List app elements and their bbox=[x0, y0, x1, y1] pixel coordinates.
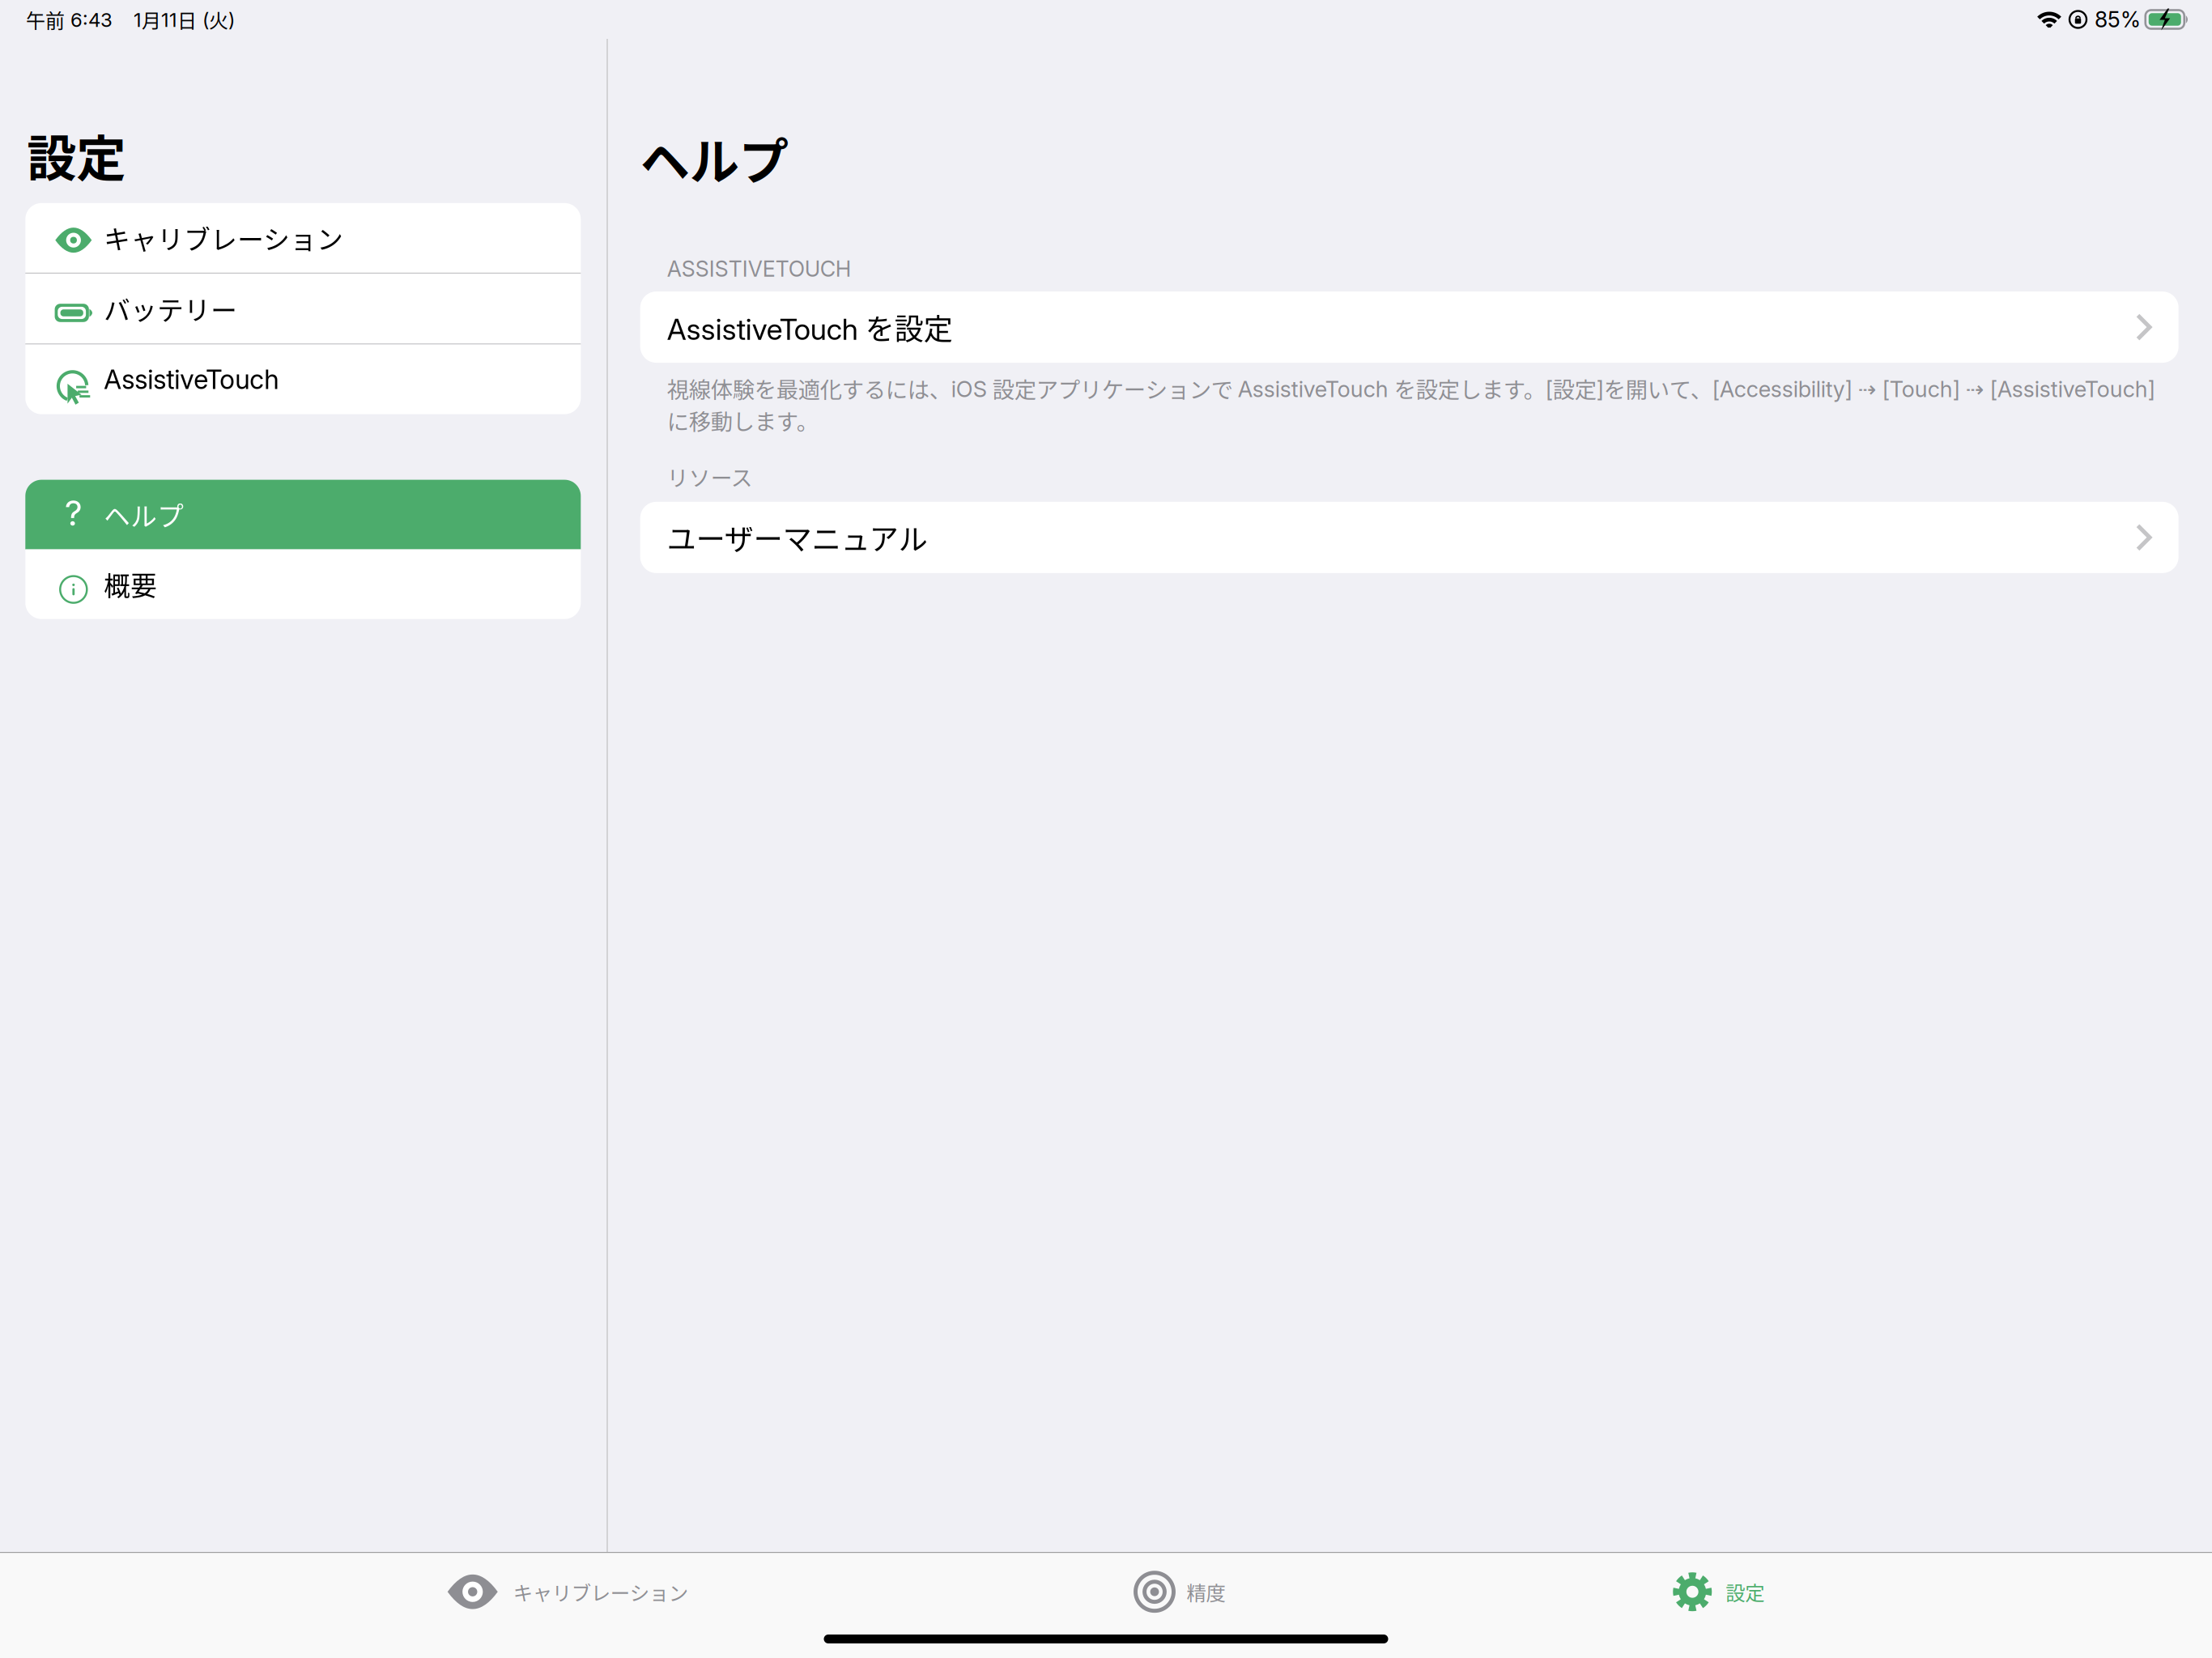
staticText: 視線体験を最適化するには、iOS 設定アプリケーションで AssistiveTo… bbox=[667, 372, 2155, 437]
staticText: キャリブレーション bbox=[513, 1577, 688, 1606]
button[interactable]: バッテリー bbox=[25, 274, 581, 343]
staticText: 85% bbox=[2095, 6, 2141, 33]
staticText: ヘルプ bbox=[640, 122, 788, 194]
button[interactable]: AssistiveTouch bbox=[25, 345, 581, 414]
button[interactable]: AssistiveTouch を設定 bbox=[640, 292, 2179, 363]
button[interactable]: 設定 bbox=[1673, 1553, 1764, 1631]
button[interactable]: キャリブレーション bbox=[448, 1553, 688, 1631]
staticText: ユーザーマニュアル bbox=[667, 516, 928, 559]
staticText: ? bbox=[65, 492, 82, 534]
staticText: 設定 bbox=[27, 119, 126, 191]
button[interactable]: ? bbox=[25, 480, 581, 549]
staticText: キャリブレーション bbox=[104, 219, 344, 257]
staticText: 精度 bbox=[1187, 1577, 1225, 1606]
staticText: AssistiveTouch bbox=[104, 363, 279, 395]
staticText: リソース bbox=[667, 461, 753, 492]
staticText: ヘルプ bbox=[104, 496, 184, 534]
staticText: バッテリー bbox=[104, 290, 237, 328]
button[interactable]: ユーザーマニュアル bbox=[640, 502, 2179, 573]
button[interactable]: キャリブレーション bbox=[25, 203, 581, 273]
staticText: 概要 bbox=[104, 565, 157, 603]
staticText: AssistiveTouch を設定 bbox=[667, 306, 953, 348]
staticText: 設定 bbox=[1726, 1577, 1764, 1606]
staticText: 1月11日 (火) bbox=[134, 5, 235, 34]
button[interactable]: 概要 bbox=[25, 549, 581, 619]
staticText: 午前 6:43 bbox=[26, 5, 113, 34]
staticText: ASSISTIVETOUCH bbox=[667, 256, 852, 282]
button[interactable]: 精度 bbox=[1136, 1553, 1225, 1631]
